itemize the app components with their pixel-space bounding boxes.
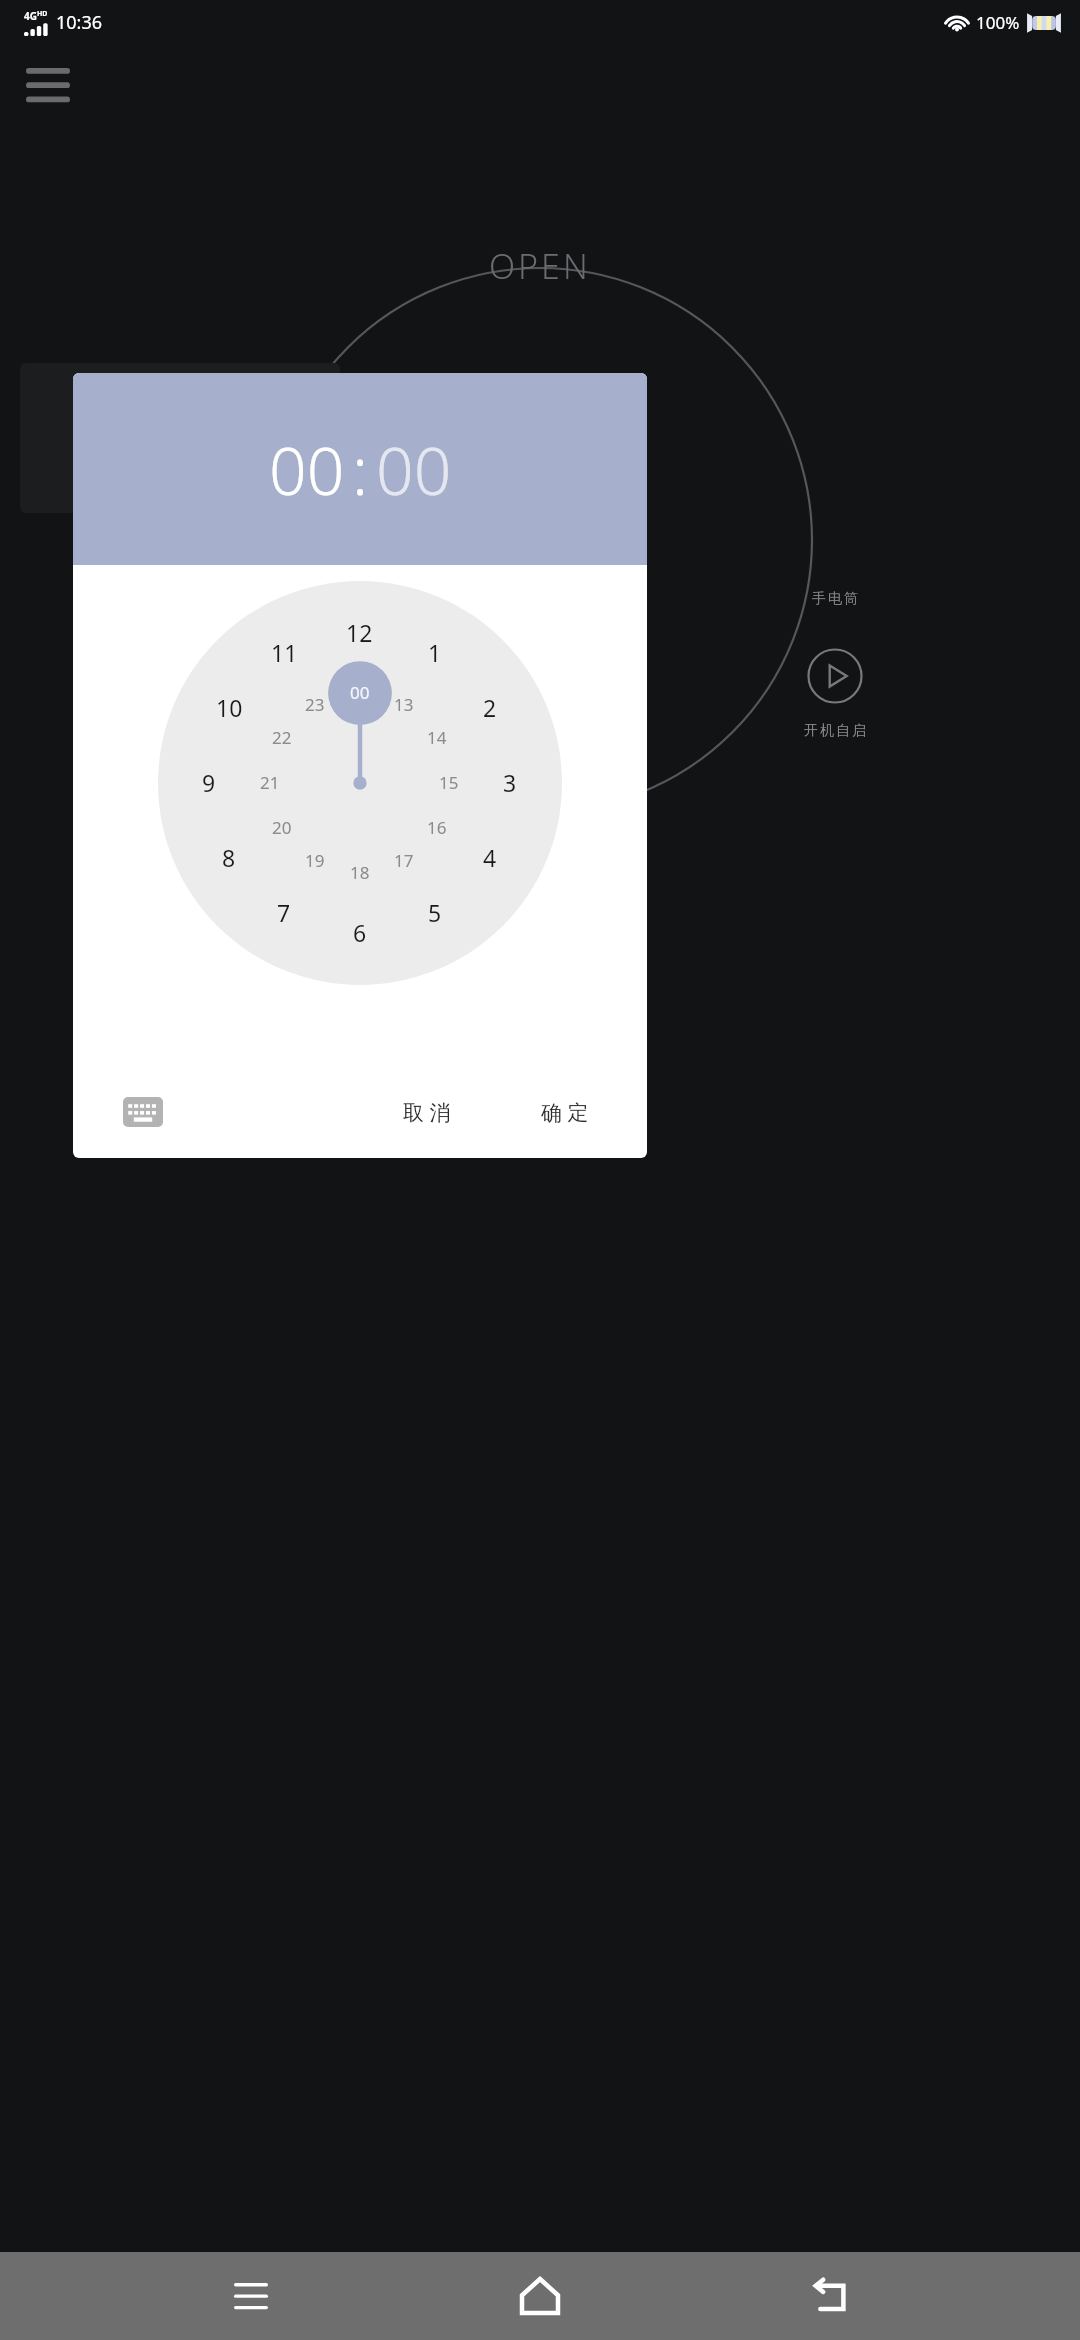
button[interactable]: 取 消	[389, 1090, 465, 1135]
button[interactable]: Back	[791, 2258, 867, 2334]
staticText: 4G	[24, 9, 37, 23]
button[interactable]: Menu	[26, 68, 70, 102]
staticText: 16	[427, 816, 447, 839]
staticText: 自动调节	[213, 722, 277, 740]
staticText: 20	[272, 816, 292, 839]
staticText: 6	[353, 917, 367, 948]
staticText: 00	[376, 424, 452, 514]
button[interactable]: 确 定	[527, 1090, 603, 1135]
staticText: 21	[260, 771, 280, 794]
staticText: 5	[428, 897, 442, 928]
staticText: 时钟模式	[508, 722, 572, 740]
staticText: 10	[216, 692, 243, 723]
staticText: 18	[350, 861, 370, 884]
staticText: 17	[394, 849, 414, 872]
staticText: 取 消	[403, 1098, 451, 1127]
staticText: 00	[269, 424, 345, 514]
staticText: OPEN	[489, 243, 591, 289]
button[interactable]: Switch to text input	[123, 1097, 163, 1127]
staticText: HD	[37, 9, 48, 19]
button[interactable]: 00	[376, 424, 452, 514]
staticText: 19	[305, 849, 325, 872]
staticText: 9	[202, 767, 216, 798]
staticText: 15	[439, 771, 459, 794]
button[interactable]: Home	[502, 2258, 578, 2334]
staticText: 1	[428, 637, 442, 668]
staticText: 开机自启	[803, 722, 867, 740]
button[interactable]: 自动调节	[195, 648, 295, 740]
staticText: 14	[427, 726, 447, 749]
button[interactable]: 开机自启	[785, 648, 885, 740]
button[interactable]: 手电筒	[785, 590, 885, 608]
staticText: 4	[483, 842, 497, 873]
staticText: :	[352, 424, 369, 514]
button[interactable]: 护眼色	[195, 590, 295, 608]
staticText: 11	[271, 637, 298, 668]
staticText: 00	[350, 681, 370, 704]
staticText: 手电筒	[811, 590, 859, 608]
staticText: 8	[222, 842, 236, 873]
staticText: 3	[503, 767, 517, 798]
staticText: 7	[277, 897, 291, 928]
staticText: 2	[483, 692, 497, 723]
staticText: 确 定	[541, 1098, 589, 1127]
staticText: 13	[394, 693, 414, 716]
staticText: 22	[272, 726, 292, 749]
button[interactable]: 00	[269, 424, 345, 514]
staticText: 100%	[976, 11, 1020, 34]
staticText: 12	[346, 617, 373, 648]
staticText: 10:36	[56, 10, 103, 35]
button[interactable]: Recents	[213, 2258, 289, 2334]
staticText: 23	[305, 693, 325, 716]
staticText: 护眼色	[221, 590, 269, 608]
button[interactable]: 时钟模式	[490, 648, 590, 740]
